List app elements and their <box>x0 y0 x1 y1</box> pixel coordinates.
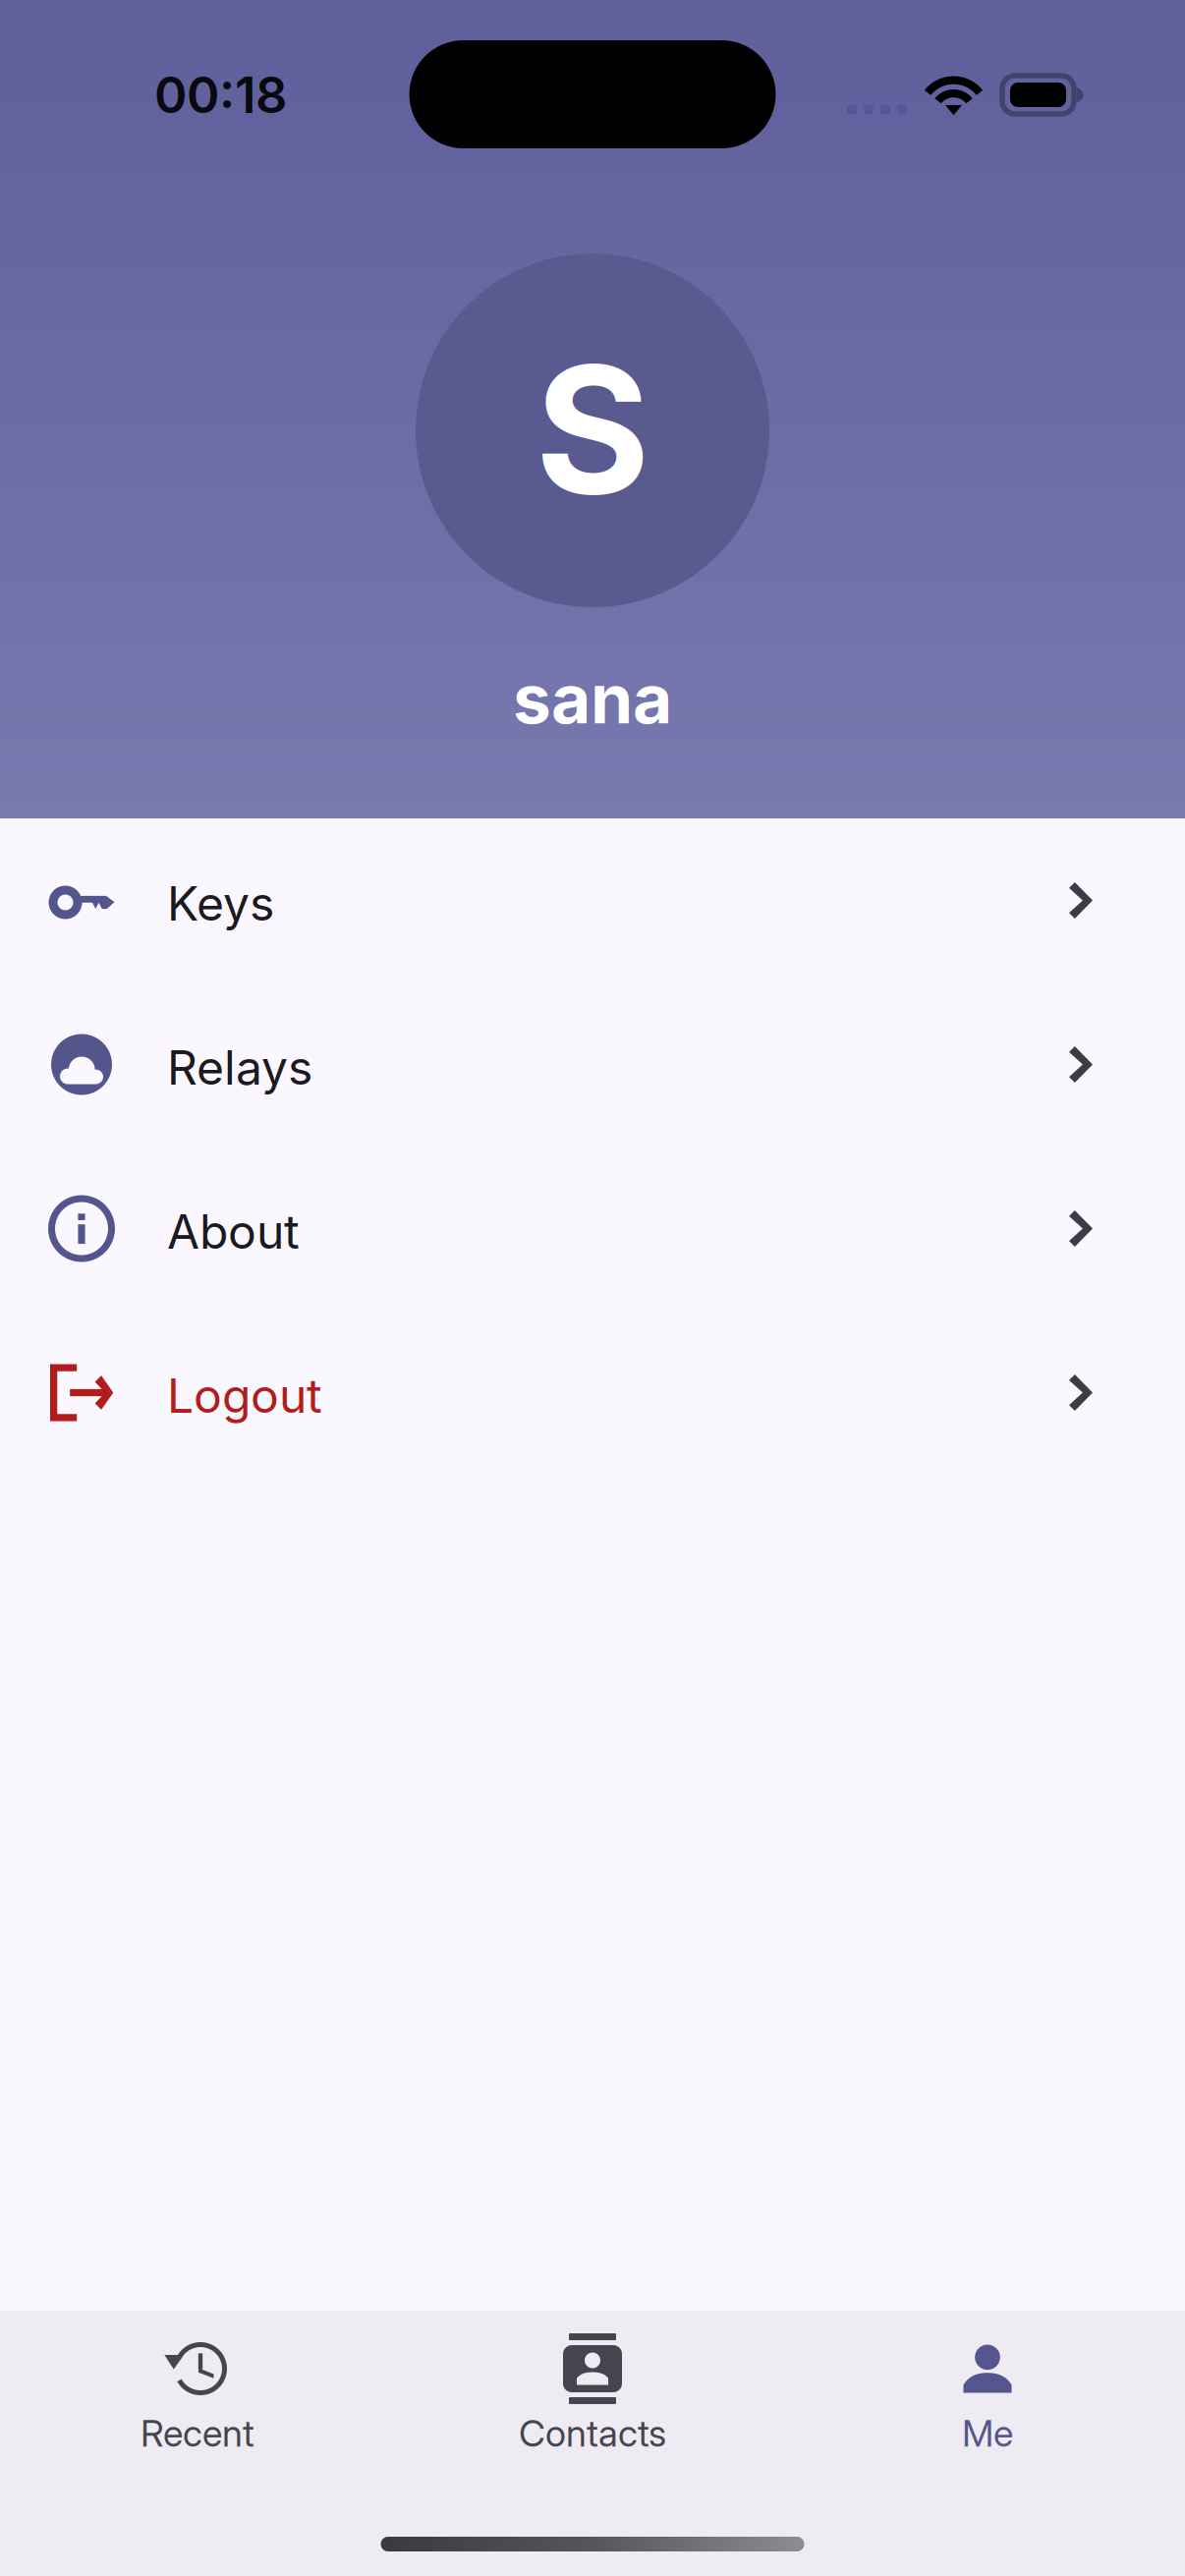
button[interactable]: Relays <box>0 982 1185 1147</box>
staticText: 00:18 <box>154 65 287 125</box>
button[interactable]: About <box>0 1147 1185 1311</box>
button[interactable]: Logout <box>0 1311 1185 1475</box>
staticText: Me <box>962 2411 1013 2455</box>
button[interactable]: Me <box>790 2340 1185 2455</box>
staticText: sana <box>513 657 672 740</box>
button[interactable]: Contacts <box>395 2340 790 2455</box>
staticText: Keys <box>167 875 274 932</box>
staticText: Recent <box>141 2411 254 2455</box>
staticText: Contacts <box>519 2411 666 2455</box>
button[interactable]: Keys <box>0 818 1185 982</box>
staticText: S <box>535 323 650 536</box>
button[interactable]: Recent <box>0 2340 395 2455</box>
staticText: Relays <box>167 1039 312 1096</box>
staticText: Logout <box>167 1367 322 1424</box>
staticText: About <box>167 1203 300 1260</box>
